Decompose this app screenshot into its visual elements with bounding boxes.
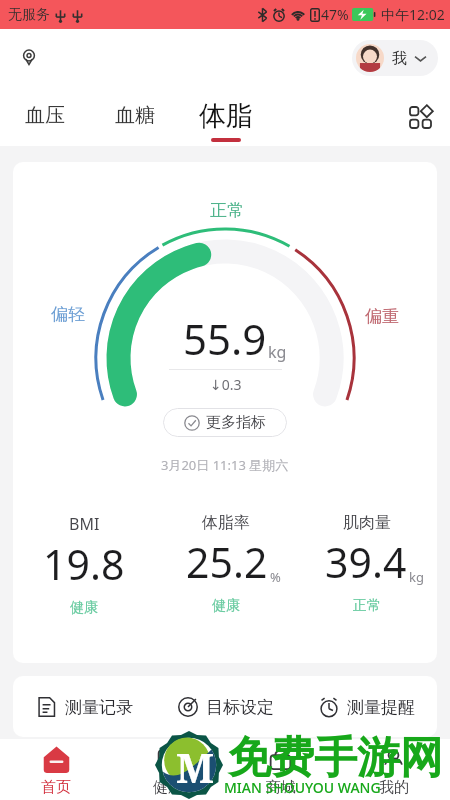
button[interactable]: 目标设定: [155, 684, 296, 730]
button[interactable]: 我: [352, 40, 438, 76]
staticText: 健康: [153, 778, 183, 797]
button[interactable]: 体脂率: [155, 513, 296, 615]
staticText: 测量提醒: [347, 697, 415, 718]
staticText: 偏轻: [51, 304, 85, 325]
staticText: 目标设定: [206, 697, 274, 718]
staticText: 47%: [321, 5, 349, 24]
button[interactable]: 健康: [112, 739, 224, 797]
button[interactable]: 首页: [0, 739, 112, 797]
staticText: 偏重: [365, 306, 399, 327]
button[interactable]: BMI: [13, 513, 155, 617]
button[interactable]: 更多指标: [163, 408, 287, 437]
staticText: 肌肉量: [343, 513, 391, 533]
staticText: 免费手游网: [228, 731, 443, 785]
staticText: ↓0.3: [210, 375, 242, 394]
staticText: 正常: [353, 597, 381, 615]
staticText: 血糖: [115, 103, 155, 128]
staticText: kg: [268, 341, 287, 363]
button[interactable]: 我的: [337, 739, 450, 797]
staticText: kg: [409, 568, 424, 586]
button[interactable]: 肌肉量: [296, 513, 437, 615]
staticText: MIAN SHOUYOU WANG: [224, 778, 381, 797]
staticText: 3月20日 11:13 星期六: [161, 456, 289, 474]
button[interactable]: 测量记录: [13, 684, 155, 730]
button[interactable]: 体脂: [193, 87, 259, 142]
button[interactable]: 血糖: [109, 87, 161, 133]
staticText: M: [176, 740, 215, 794]
staticText: 体脂率: [202, 513, 250, 533]
staticText: %: [270, 568, 281, 586]
staticText: 我的: [379, 778, 409, 797]
staticText: 39.4: [325, 534, 407, 590]
staticText: 健康: [70, 599, 98, 617]
staticText: 测量记录: [65, 697, 133, 718]
staticText: 我: [392, 49, 407, 68]
button[interactable]: Location: [12, 41, 46, 75]
button[interactable]: Apps: [404, 101, 436, 133]
staticText: BMI: [69, 513, 100, 535]
staticText: 中午12:02: [381, 5, 445, 24]
staticText: 健康: [212, 597, 240, 615]
button[interactable]: 测量提醒: [296, 684, 437, 730]
staticText: 25.2: [186, 534, 268, 590]
staticText: 19.8: [43, 536, 125, 592]
staticText: 更多指标: [206, 413, 266, 432]
staticText: 商城: [266, 778, 296, 797]
staticText: 正常: [210, 200, 244, 221]
button[interactable]: 血压: [19, 87, 71, 133]
staticText: 55.9: [183, 310, 267, 367]
staticText: 无服务: [8, 6, 50, 24]
staticText: 体脂: [199, 99, 253, 133]
staticText: 首页: [41, 778, 71, 797]
staticText: 血压: [25, 103, 65, 128]
button[interactable]: 商城: [224, 739, 337, 797]
